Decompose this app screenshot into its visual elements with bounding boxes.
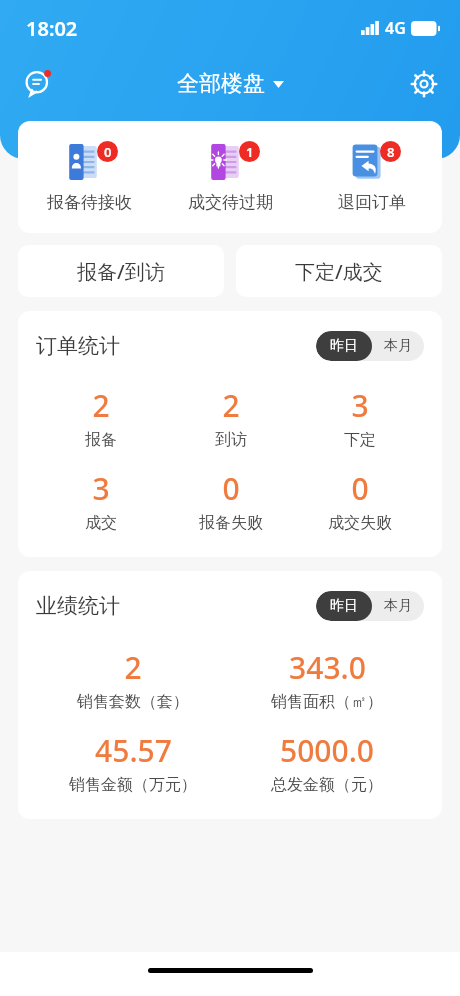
staticText: 4G bbox=[385, 17, 406, 39]
button[interactable]: 2 bbox=[36, 385, 166, 450]
staticText: 到访 bbox=[215, 430, 247, 450]
button[interactable]: 0 bbox=[18, 139, 160, 215]
staticText: 全部楼盘 bbox=[177, 70, 265, 98]
staticText: 报备失败 bbox=[199, 513, 263, 533]
staticText: 3 bbox=[351, 385, 369, 426]
staticText: 成交待过期 bbox=[188, 192, 273, 213]
button[interactable]: 3 bbox=[36, 468, 166, 533]
staticText: 昨日 bbox=[330, 337, 358, 355]
staticText: 5000.0 bbox=[280, 730, 374, 771]
staticText: 昨日 bbox=[330, 597, 358, 615]
button[interactable]: 8 bbox=[301, 139, 442, 215]
button[interactable]: 3 bbox=[295, 385, 424, 450]
staticText: 成交 bbox=[85, 513, 117, 533]
staticText: 0 bbox=[104, 143, 112, 161]
staticText: 订单统计 bbox=[36, 333, 120, 359]
staticText: 0 bbox=[351, 468, 369, 509]
staticText: 退回订单 bbox=[338, 192, 406, 213]
staticText: 2 bbox=[222, 385, 240, 426]
button[interactable]: 2 bbox=[36, 647, 230, 712]
button[interactable]: 昨日 bbox=[330, 331, 358, 361]
staticText: 报备/到访 bbox=[77, 258, 165, 285]
staticText: 业绩统计 bbox=[36, 593, 120, 619]
button[interactable]: 1 bbox=[160, 139, 301, 215]
button[interactable]: 全部楼盘 bbox=[177, 70, 284, 98]
button[interactable]: 343.0 bbox=[230, 647, 424, 712]
button[interactable]: 报备/到访 bbox=[18, 245, 224, 297]
staticText: 2 bbox=[92, 385, 110, 426]
staticText: 343.0 bbox=[289, 647, 366, 688]
button[interactable]: 2 bbox=[166, 385, 295, 450]
staticText: 0 bbox=[222, 468, 240, 509]
staticText: 报备 bbox=[85, 430, 117, 450]
button[interactable]: 0 bbox=[166, 468, 295, 533]
button[interactable]: 本月 bbox=[384, 331, 412, 361]
staticText: 1 bbox=[246, 143, 254, 161]
button[interactable]: 5000.0 bbox=[230, 730, 424, 795]
button[interactable]: 昨日 bbox=[330, 591, 358, 621]
staticText: 45.57 bbox=[95, 730, 172, 771]
staticText: 销售面积（㎡） bbox=[271, 692, 383, 712]
staticText: 销售套数（套） bbox=[77, 692, 189, 712]
staticText: 3 bbox=[92, 468, 110, 509]
staticText: 本月 bbox=[384, 597, 412, 615]
staticText: 下定/成交 bbox=[295, 258, 383, 285]
button[interactable]: Settings bbox=[402, 62, 446, 106]
staticText: 本月 bbox=[384, 337, 412, 355]
staticText: 成交失败 bbox=[328, 513, 392, 533]
button[interactable]: Messages bbox=[16, 62, 60, 106]
staticText: 8 bbox=[387, 143, 395, 161]
staticText: 18:02 bbox=[26, 15, 78, 42]
staticText: 销售金额（万元） bbox=[69, 775, 197, 795]
staticText: 报备待接收 bbox=[47, 192, 132, 213]
button[interactable]: 本月 bbox=[384, 591, 412, 621]
button[interactable]: 45.57 bbox=[36, 730, 230, 795]
button[interactable]: 0 bbox=[295, 468, 424, 533]
staticText: 2 bbox=[124, 647, 142, 688]
staticText: 总发金额（元） bbox=[271, 775, 383, 795]
button[interactable]: 下定/成交 bbox=[236, 245, 442, 297]
staticText: 下定 bbox=[344, 430, 376, 450]
